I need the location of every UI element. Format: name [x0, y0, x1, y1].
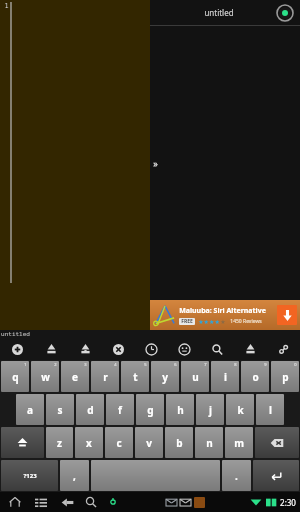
button[interactable]: Symbols — [1, 460, 58, 491]
button[interactable]: u — [181, 361, 209, 392]
button[interactable]: r — [91, 361, 119, 392]
staticText: n — [206, 436, 213, 450]
staticText: , — [73, 469, 76, 483]
button[interactable]: Load — [68, 338, 102, 360]
staticText: 2 — [54, 362, 57, 367]
staticText: 3 — [84, 362, 87, 367]
staticText: j — [209, 403, 212, 417]
staticText: v — [146, 436, 152, 450]
staticText: y — [162, 370, 168, 384]
button[interactable]: Search — [82, 493, 100, 511]
staticText: a — [27, 403, 33, 417]
staticText: t — [133, 370, 138, 384]
staticText: p — [282, 370, 289, 384]
button[interactable]: Upload — [234, 338, 267, 360]
staticText: 9 — [264, 362, 267, 367]
button[interactable]: y — [151, 361, 179, 392]
staticText: 8 — [234, 362, 237, 367]
button[interactable]: q — [1, 361, 29, 392]
staticText: 1 — [4, 1, 9, 11]
button[interactable]: Close — [102, 338, 135, 360]
staticText: untitled — [1, 330, 30, 338]
button[interactable]: k — [226, 394, 254, 425]
button[interactable]: n — [195, 427, 223, 458]
staticText: untitled — [162, 7, 276, 18]
button[interactable]: e — [61, 361, 89, 392]
button[interactable]: History — [135, 338, 168, 360]
staticText: m — [234, 436, 244, 450]
button[interactable]: Recents — [32, 493, 50, 511]
staticText: ★ — [220, 318, 226, 325]
staticText: x — [86, 436, 92, 450]
button[interactable]: Install — [277, 305, 297, 325]
staticText: ★★★★ — [198, 318, 220, 325]
staticText: u — [192, 370, 199, 384]
staticText: e — [72, 370, 78, 384]
staticText: FREE — [181, 318, 193, 325]
staticText: c — [116, 436, 122, 450]
button[interactable]: Emoji — [168, 338, 201, 360]
staticText: w — [41, 370, 50, 384]
button[interactable]: Backspace — [255, 427, 299, 458]
button[interactable]: Add — [0, 338, 34, 360]
staticText: s — [57, 403, 63, 417]
button[interactable]: Record — [276, 4, 294, 22]
button[interactable]: . — [222, 460, 251, 491]
staticText: q — [12, 370, 19, 384]
button[interactable]: untitled — [150, 0, 300, 25]
button[interactable]: c — [105, 427, 133, 458]
staticText: i — [224, 370, 227, 384]
staticText: f — [118, 403, 122, 417]
staticText: 2:30 — [280, 497, 296, 508]
staticText: o — [252, 370, 259, 384]
button[interactable]: Maluuba: Siri Alternative — [150, 300, 300, 330]
button[interactable]: , — [60, 460, 89, 491]
button[interactable]: p — [271, 361, 299, 392]
button[interactable] — [91, 460, 220, 491]
button[interactable]: z — [46, 427, 73, 458]
staticText: 0 — [294, 362, 297, 367]
button[interactable]: h — [166, 394, 194, 425]
button[interactable]: Home — [6, 493, 24, 511]
staticText: d — [87, 403, 94, 417]
button[interactable]: Back — [58, 493, 76, 511]
button[interactable]: o — [241, 361, 269, 392]
staticText: l — [269, 403, 272, 417]
staticText: 6 — [174, 362, 177, 367]
staticText: z — [57, 436, 62, 450]
button[interactable]: Save — [34, 338, 68, 360]
staticText: 1450 Reviews — [230, 318, 262, 325]
staticText: Maluuba: Siri Alternative — [179, 306, 266, 316]
staticText: 1 — [24, 362, 27, 367]
staticText: 4 — [114, 362, 117, 367]
staticText: r — [103, 370, 108, 384]
button[interactable]: Shift — [1, 427, 44, 458]
button[interactable]: a — [16, 394, 44, 425]
button[interactable]: g — [136, 394, 164, 425]
staticText: » — [153, 157, 158, 169]
staticText: g — [147, 403, 154, 417]
button[interactable]: b — [165, 427, 193, 458]
button[interactable]: l — [256, 394, 284, 425]
button[interactable]: Menu — [104, 493, 122, 511]
button[interactable]: m — [225, 427, 253, 458]
staticText: ?123 — [23, 472, 37, 480]
button[interactable]: x — [75, 427, 103, 458]
button[interactable]: s — [46, 394, 74, 425]
button[interactable]: w — [31, 361, 59, 392]
staticText: h — [177, 403, 184, 417]
button[interactable]: f — [106, 394, 134, 425]
button[interactable]: Link — [267, 338, 300, 360]
button[interactable]: Search — [201, 338, 234, 360]
button[interactable]: t — [121, 361, 149, 392]
staticText: 5 — [144, 362, 147, 367]
staticText: 7 — [204, 362, 207, 367]
button[interactable]: j — [196, 394, 224, 425]
button[interactable]: v — [135, 427, 163, 458]
button[interactable]: 1 — [0, 0, 150, 330]
button[interactable]: i — [211, 361, 239, 392]
button[interactable]: d — [76, 394, 104, 425]
button[interactable]: Enter — [253, 460, 299, 491]
staticText: k — [237, 403, 244, 417]
staticText: b — [176, 436, 183, 450]
